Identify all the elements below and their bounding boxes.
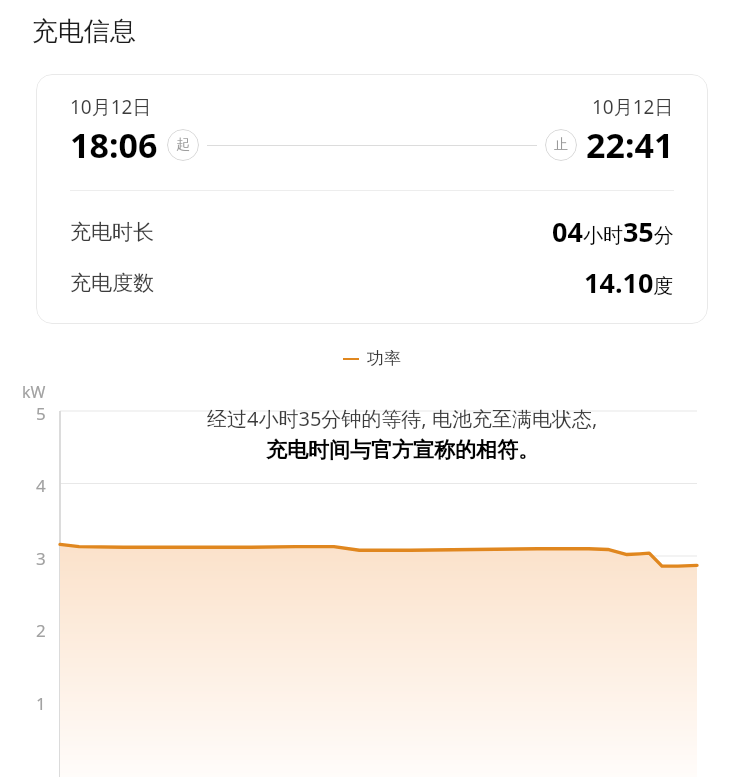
staticText: 10月12日 [70,94,152,120]
staticText: 10月12日 [592,94,674,120]
staticText: 充电信息 [32,15,136,48]
staticText: 2 [36,619,46,642]
button[interactable]: 10月12日 [36,74,708,324]
staticText: kW [22,381,46,403]
staticText: 止 [554,136,568,154]
staticText: 充电度数 [70,270,154,296]
staticText: 04小时35分 [552,213,674,250]
staticText: 4 [36,474,46,497]
staticText: 22:41 [586,122,674,168]
staticText: 1 [36,692,46,715]
staticText: 功率 [367,348,401,369]
staticText: 起 [176,136,190,154]
staticText: 3 [36,547,46,570]
staticText: 5 [36,402,46,425]
button[interactable]: 充电时长 [70,213,674,250]
staticText: 14.10度 [584,264,674,301]
staticText: 充电时长 [70,219,154,245]
staticText: 经过4小时35分钟的等待, 电池充至满电状态, [207,405,598,432]
staticText: 18:06 [70,122,158,168]
staticText: 充电时间与官方宣称的相符。 [266,437,539,463]
button[interactable]: 起 [167,129,199,161]
button[interactable]: 止 [545,129,577,161]
button[interactable]: 充电度数 [70,264,674,301]
